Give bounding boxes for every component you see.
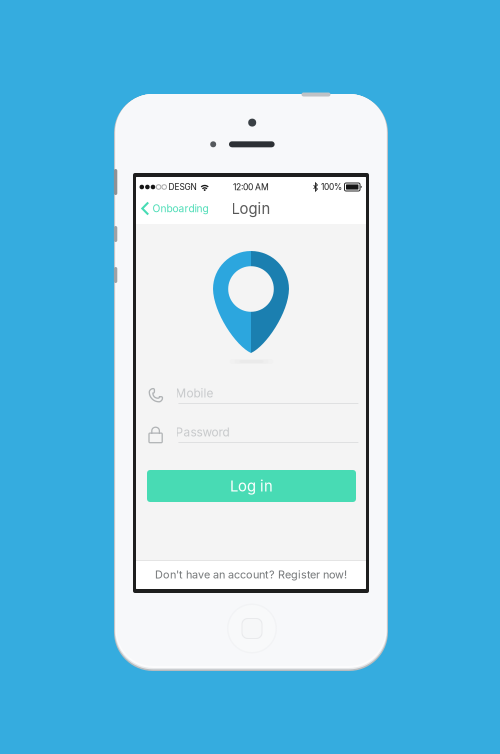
staticText: 100%	[321, 182, 342, 192]
staticText: DESGN	[168, 182, 196, 192]
button[interactable]: Onboarding	[136, 198, 213, 223]
button[interactable]: Password	[136, 424, 366, 446]
button[interactable]: Don't have an account? Register now!	[136, 560, 366, 589]
staticText: 12:00 AM	[233, 182, 269, 192]
button[interactable]: Mobile	[136, 385, 366, 407]
button[interactable]: Log in	[147, 470, 356, 502]
staticText: Password	[176, 425, 230, 439]
staticText: Mobile	[176, 386, 214, 400]
staticText: Log in	[230, 477, 273, 495]
staticText: Don't have an account? Register now!	[155, 568, 347, 581]
staticText: Onboarding	[152, 202, 208, 215]
staticText: Login	[231, 199, 270, 217]
